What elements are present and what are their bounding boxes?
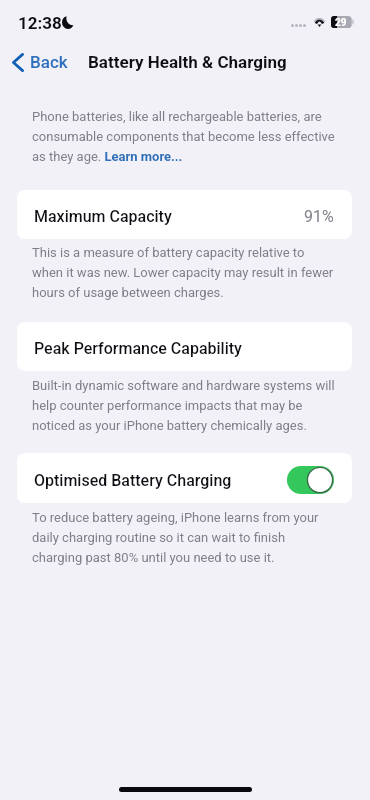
staticText: Phone batteries, like all rechargeable b… (32, 109, 337, 164)
button[interactable]: Peak Performance Capability (17, 322, 352, 371)
staticText: Maximum Capacity (34, 207, 172, 226)
staticText: 91% (304, 207, 334, 226)
staticText: To reduce battery ageing, iPhone learns … (32, 510, 337, 565)
button[interactable]: Back (8, 50, 72, 74)
staticText: Back (30, 52, 68, 72)
button[interactable]: Optimised Battery Charging (17, 453, 352, 503)
button[interactable]: Toggle Optimised Battery Charging (287, 466, 334, 494)
staticText: 12:38 (18, 13, 62, 33)
staticText: 29 (335, 17, 347, 29)
staticText: Battery Health & Charging (88, 52, 287, 72)
staticText: Peak Performance Capability (34, 339, 242, 358)
staticText: This is a measure of battery capacity re… (32, 245, 337, 300)
staticText: Built-in dynamic software and hardware s… (32, 378, 337, 433)
button[interactable]: Maximum Capacity (17, 190, 352, 239)
staticText: Optimised Battery Charging (34, 471, 232, 490)
